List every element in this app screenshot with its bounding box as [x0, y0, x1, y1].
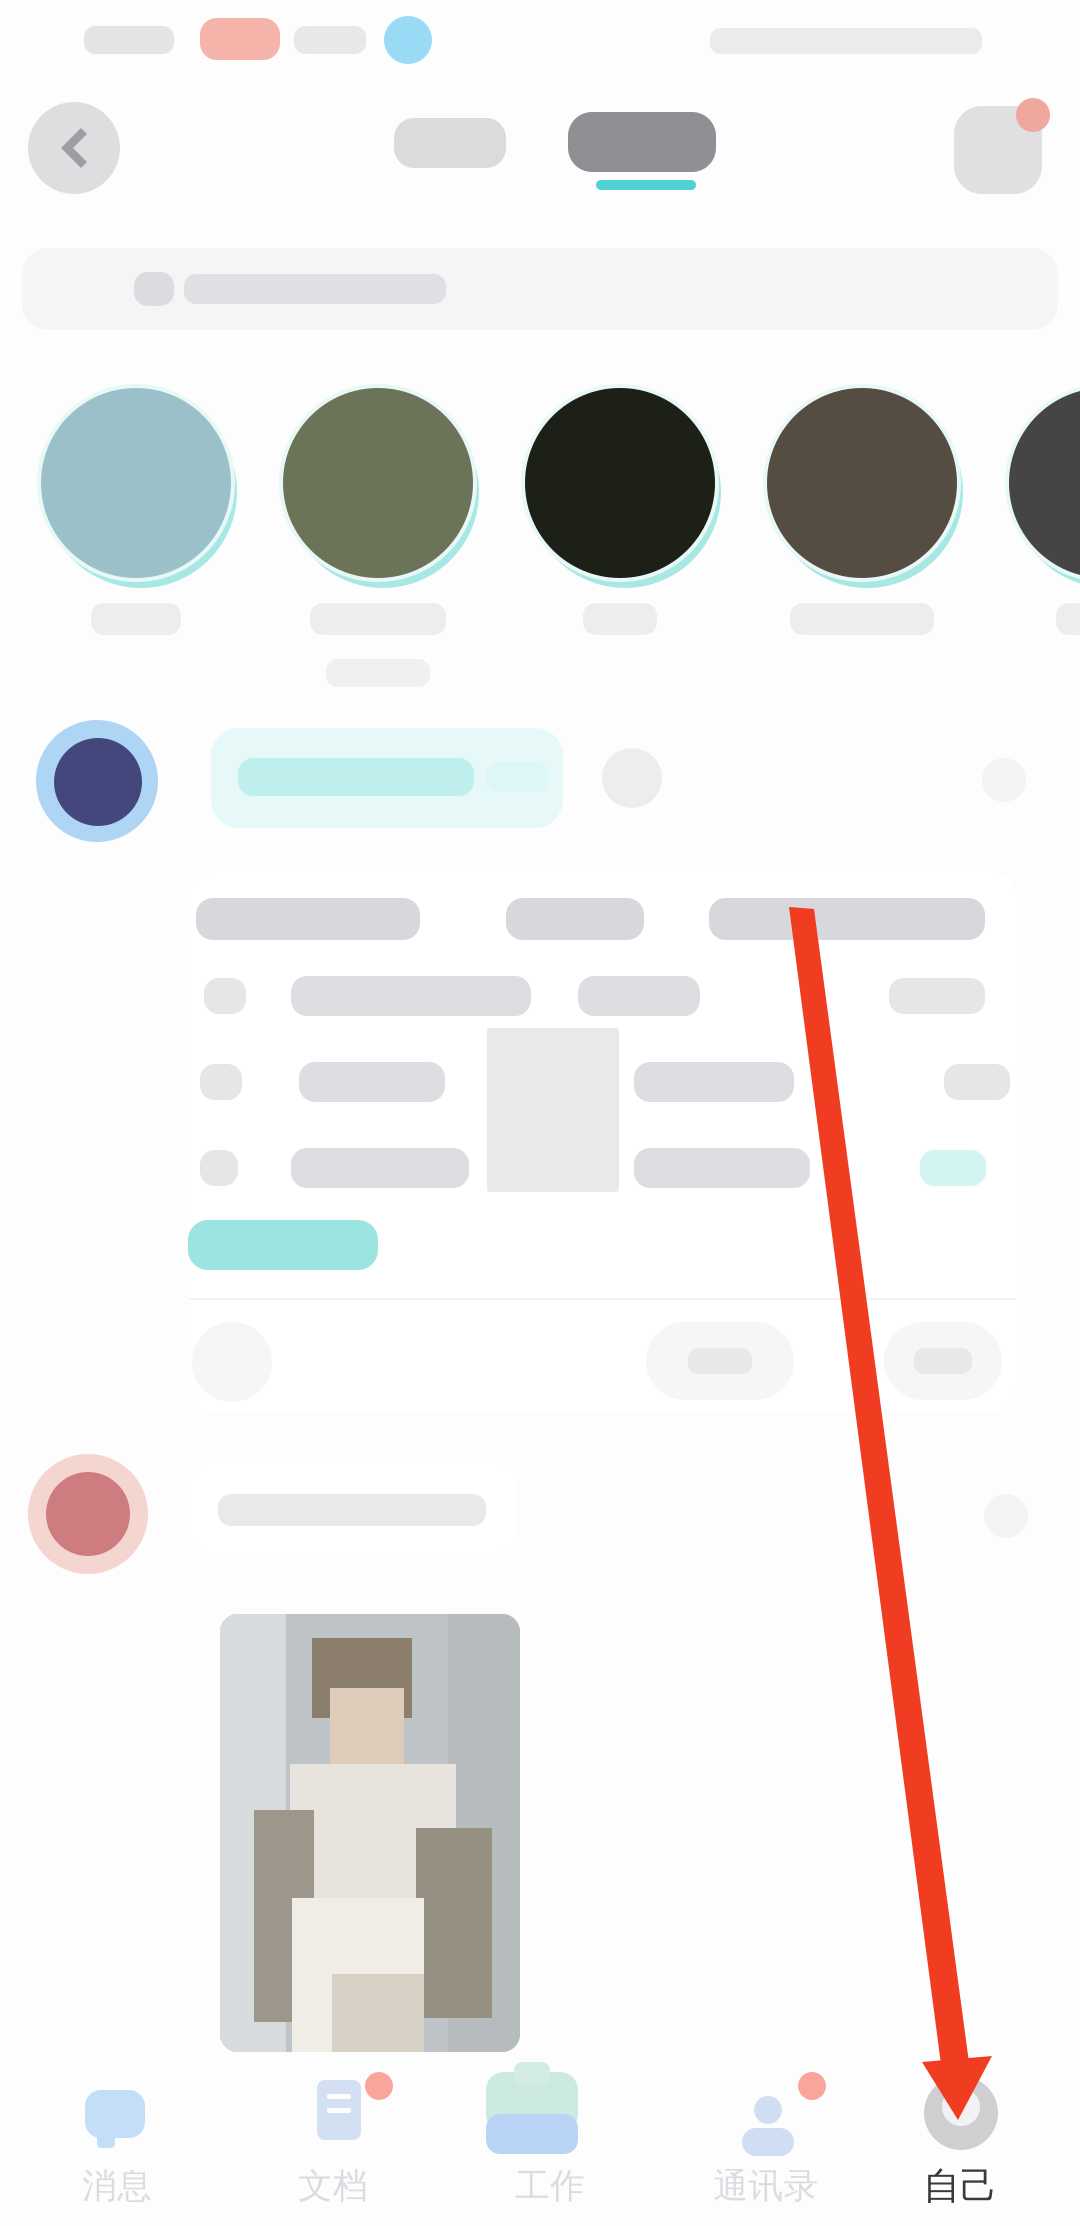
- button[interactable]: Me tab: [852, 2062, 1068, 2218]
- button[interactable]: [257, 358, 499, 698]
- button[interactable]: [499, 358, 741, 698]
- button[interactable]: [15, 358, 257, 698]
- button[interactable]: 文档: [225, 2062, 441, 2218]
- staticText: 消息: [82, 2165, 152, 2207]
- button[interactable]: [884, 1322, 1002, 1400]
- staticText: 工作: [515, 2165, 585, 2207]
- button[interactable]: View details: [188, 1220, 378, 1270]
- button[interactable]: 通讯录: [658, 2062, 874, 2218]
- button[interactable]: [983, 358, 1080, 698]
- button[interactable]: Photo attachment: [220, 1614, 520, 2052]
- button[interactable]: [646, 1322, 794, 1400]
- button[interactable]: [741, 358, 983, 698]
- button[interactable]: Back: [0, 88, 150, 230]
- staticText: 文档: [298, 2165, 368, 2207]
- button[interactable]: 工作: [442, 2062, 658, 2218]
- button[interactable]: React: [192, 1322, 272, 1402]
- button[interactable]: More options: [938, 88, 1080, 230]
- button[interactable]: [558, 88, 764, 230]
- staticText: 通讯录: [713, 2165, 818, 2207]
- button[interactable]: 消息: [9, 2062, 225, 2218]
- button[interactable]: [372, 88, 552, 230]
- button[interactable]: Search: [22, 248, 1058, 330]
- staticText: 自己: [923, 2163, 997, 2209]
